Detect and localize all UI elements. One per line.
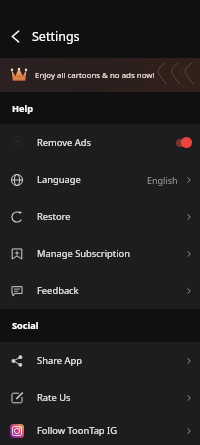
staticText: Rate Us xyxy=(37,391,71,404)
button[interactable]: Remove Ads toggle xyxy=(176,137,192,148)
staticText: Follow ToonTap IG xyxy=(37,424,118,437)
staticText: Feedback xyxy=(37,284,79,297)
button[interactable]: Enjoy all cartoons & no ads now! xyxy=(0,58,200,92)
staticText: Social xyxy=(12,319,39,332)
button[interactable]: Restore xyxy=(0,198,200,235)
button[interactable]: Remove Ads xyxy=(0,124,200,161)
staticText: Help xyxy=(12,102,34,115)
staticText: English xyxy=(147,174,178,186)
button[interactable]: Back xyxy=(5,26,26,47)
button[interactable]: Language xyxy=(0,161,200,198)
staticText: Settings xyxy=(32,28,80,45)
staticText: Remove Ads xyxy=(37,136,91,149)
button[interactable]: Feedback xyxy=(0,272,200,309)
button[interactable]: Share App xyxy=(0,342,200,379)
staticText: Restore xyxy=(37,210,71,223)
button[interactable]: Manage Subscription xyxy=(0,235,200,272)
staticText: Enjoy all cartoons & no ads now! xyxy=(35,70,155,81)
staticText: Share App xyxy=(37,354,82,367)
button[interactable]: Follow ToonTap IG xyxy=(0,416,200,445)
button[interactable]: Rate Us xyxy=(0,379,200,416)
staticText: Manage Subscription xyxy=(37,247,131,260)
staticText: Language xyxy=(37,173,81,186)
